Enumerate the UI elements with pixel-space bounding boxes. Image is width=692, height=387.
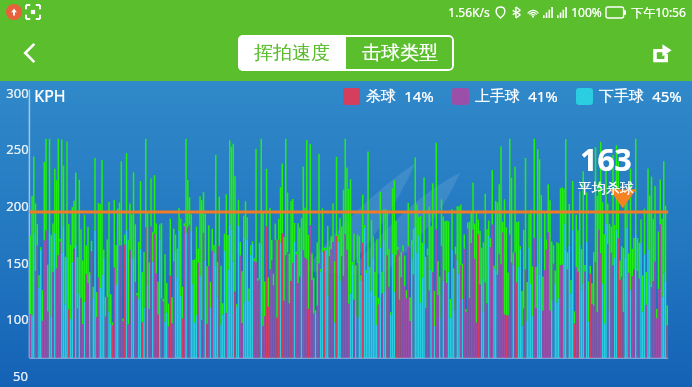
button[interactable]: 下手球 <box>576 86 682 106</box>
staticText: 14% <box>404 86 434 106</box>
button[interactable]: Share <box>642 33 682 73</box>
staticText: 100 <box>6 310 29 328</box>
staticText: 上手球 <box>475 87 520 106</box>
button[interactable]: Back <box>8 31 52 75</box>
staticText: 杀球 <box>366 87 396 106</box>
button[interactable]: 上手球 <box>452 86 558 106</box>
staticText: 下午10:56 <box>631 4 686 20</box>
staticText: 45% <box>652 86 682 106</box>
staticText: 41% <box>528 86 558 106</box>
staticText: 150 <box>6 254 29 272</box>
staticText: 300 <box>6 84 29 102</box>
button[interactable]: 杀球 <box>343 86 434 106</box>
staticText: 163 <box>580 139 632 180</box>
staticText: 250 <box>6 140 29 158</box>
button[interactable]: 击球类型 <box>346 35 454 71</box>
staticText: 1.56K/s <box>448 4 490 20</box>
staticText: 平均杀球 <box>578 180 634 198</box>
staticText: 200 <box>6 197 29 215</box>
button[interactable]: 挥拍速度 <box>238 35 346 71</box>
staticText: 挥拍速度 <box>254 41 330 65</box>
staticText: KPH <box>34 85 66 107</box>
staticText: 50 <box>13 367 28 385</box>
staticText: 100% <box>571 4 602 20</box>
staticText: 击球类型 <box>362 41 438 65</box>
staticText: 下手球 <box>599 87 644 106</box>
